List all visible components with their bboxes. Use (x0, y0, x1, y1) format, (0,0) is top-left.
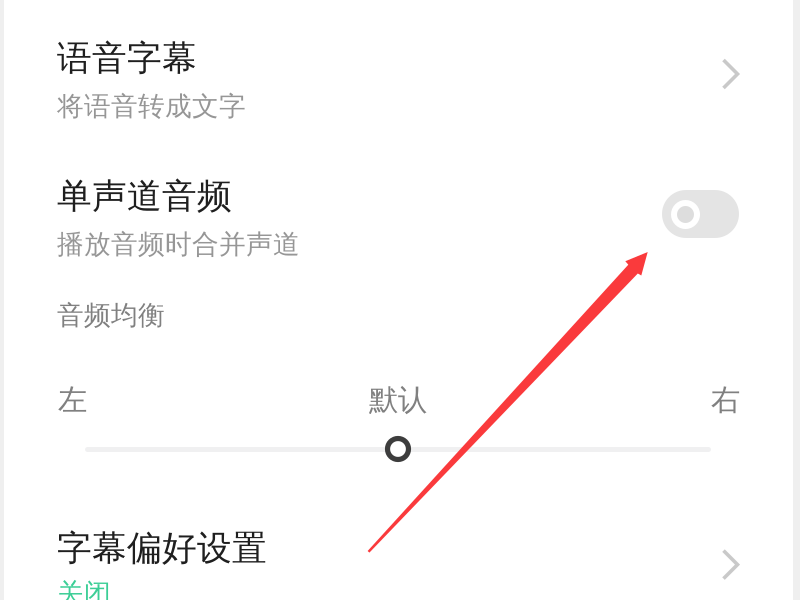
staticText: 单声道音频 (57, 175, 232, 218)
staticText: 语音字幕 (57, 37, 197, 80)
button[interactable]: 单声道音频 (4, 138, 793, 272)
staticText: 默认 (369, 382, 427, 418)
staticText: 右 (711, 382, 740, 418)
button[interactable]: 语音字幕 (4, 0, 793, 134)
button[interactable]: 字幕偏好设置 (4, 487, 793, 600)
staticText: 左 (58, 382, 87, 418)
staticText: 播放音频时合并声道 (57, 228, 300, 261)
staticText: 将语音转成文字 (57, 90, 246, 123)
staticText: 字幕偏好设置 (57, 527, 267, 570)
staticText: 音频均衡 (57, 299, 165, 332)
button[interactable]: 单声道音频, off (662, 190, 739, 238)
staticText: 关闭 (57, 577, 111, 600)
button[interactable]: Audio balance (85, 427, 711, 471)
